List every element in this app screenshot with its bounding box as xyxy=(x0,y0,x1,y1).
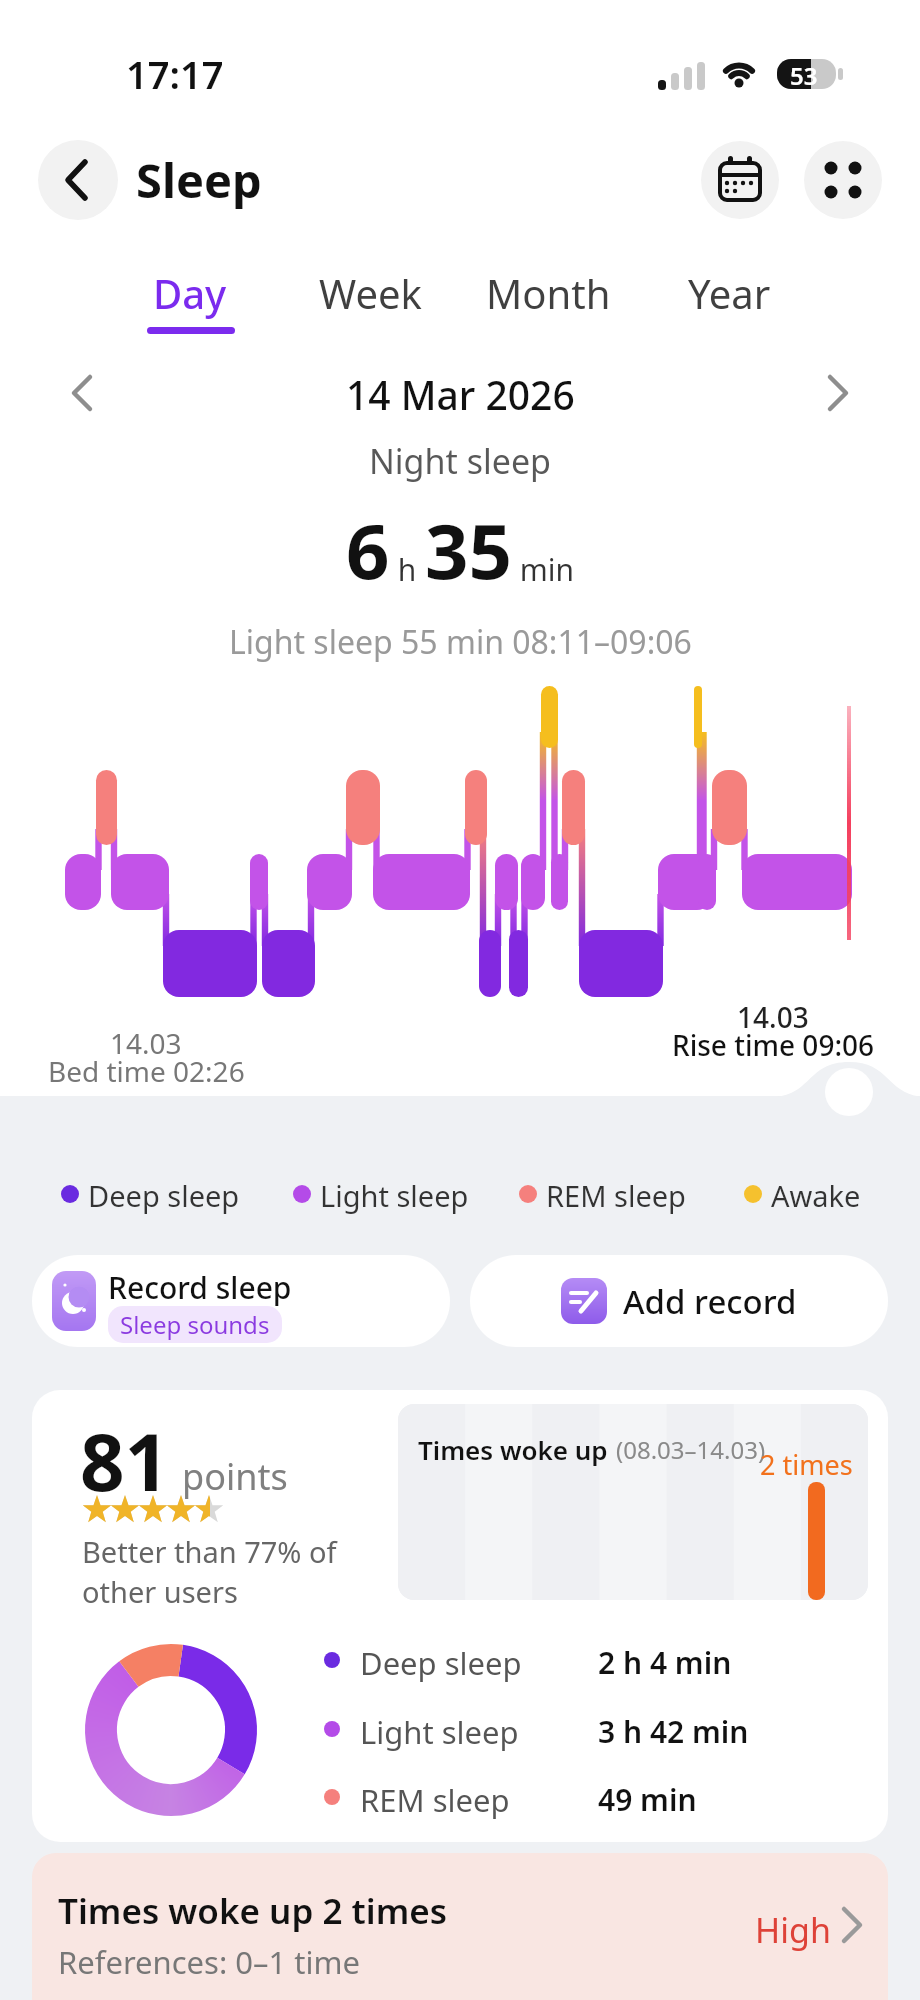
staticText: 3 h 42 min xyxy=(598,1711,749,1752)
staticText: Night sleep xyxy=(369,438,551,484)
staticText: 14.03 xyxy=(737,998,809,1036)
staticText: Better than 77% of xyxy=(82,1532,337,1571)
staticText: Light sleep 55 min 08:11–09:06 xyxy=(229,620,692,664)
staticText: Sleep xyxy=(136,148,262,212)
staticText: 49 min xyxy=(598,1779,697,1820)
staticText: 14 Mar 2026 xyxy=(346,368,575,421)
staticText: h xyxy=(390,549,425,590)
staticText: Awake xyxy=(771,1176,861,1215)
staticText: Month xyxy=(486,266,611,320)
staticText: 2 times xyxy=(760,1446,853,1483)
button[interactable] xyxy=(820,1062,878,1120)
staticText: 53 xyxy=(790,59,818,92)
staticText: Times woke up xyxy=(418,1432,608,1467)
staticText: Light sleep xyxy=(320,1176,469,1215)
button[interactable] xyxy=(38,140,118,220)
staticText: Rise time 09:06 xyxy=(672,1026,875,1064)
staticText: 2 h 4 min xyxy=(598,1642,732,1683)
staticText: Add record xyxy=(623,1279,797,1324)
staticText: References: 0–1 time xyxy=(58,1941,361,1983)
staticText: High xyxy=(755,1907,831,1953)
staticText: Light sleep xyxy=(360,1711,519,1753)
button[interactable] xyxy=(804,141,882,219)
staticText: Year xyxy=(688,266,771,320)
staticText: Sleep sounds xyxy=(120,1308,270,1341)
staticText: min xyxy=(512,549,575,590)
staticText: (08.03–14.03) xyxy=(616,1433,766,1466)
staticText: Times woke up 2 times xyxy=(58,1887,447,1935)
staticText: REM sleep xyxy=(360,1779,510,1821)
staticText: other users xyxy=(82,1572,238,1611)
staticText: Deep sleep xyxy=(88,1176,240,1215)
staticText: 6 xyxy=(346,498,390,602)
staticText: Week xyxy=(319,266,422,320)
button[interactable] xyxy=(701,141,779,219)
staticText: Day xyxy=(153,266,227,320)
staticText: 35 xyxy=(425,498,512,602)
button[interactable] xyxy=(56,366,108,418)
staticText: 81 xyxy=(80,1408,170,1514)
staticText: Bed time 02:26 xyxy=(48,1052,245,1090)
button[interactable] xyxy=(812,366,864,418)
button[interactable]: Add record xyxy=(470,1255,888,1347)
staticText: Deep sleep xyxy=(360,1642,522,1684)
staticText: 14.03 xyxy=(110,1024,182,1062)
staticText: REM sleep xyxy=(546,1176,686,1215)
staticText: 17:17 xyxy=(126,48,224,100)
button[interactable]: Record sleep xyxy=(32,1255,450,1347)
button[interactable]: Times woke up 2 times xyxy=(32,1853,888,2000)
staticText: Record sleep xyxy=(108,1267,292,1308)
staticText: points xyxy=(182,1452,288,1501)
